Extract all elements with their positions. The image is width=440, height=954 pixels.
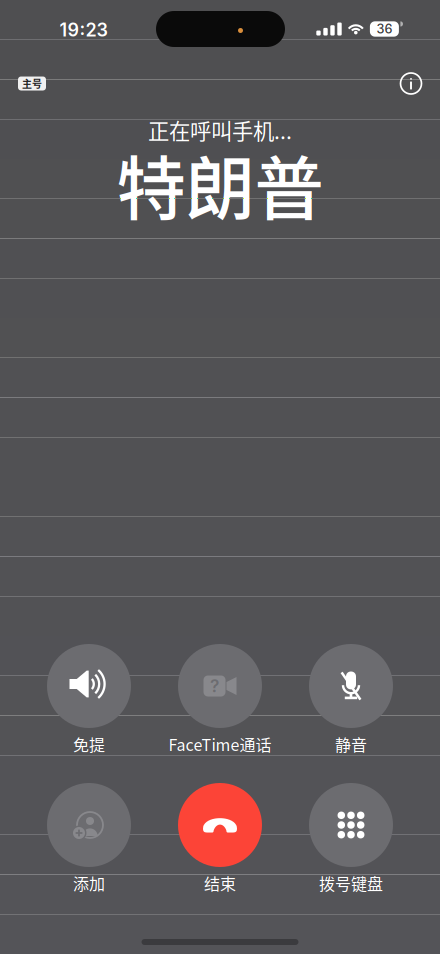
staticText: 结束 xyxy=(204,871,236,895)
button[interactable]: 主号 xyxy=(18,76,46,90)
staticText: 36 xyxy=(376,21,392,37)
staticText: 19:23 xyxy=(59,19,107,41)
button[interactable]: ? xyxy=(154,644,285,759)
button[interactable]: 拨号键盘 xyxy=(285,783,416,898)
button[interactable]: 结束 xyxy=(154,783,285,898)
staticText: 拨号键盘 xyxy=(319,871,383,895)
button[interactable]: Call details xyxy=(398,70,424,96)
staticText: 主号 xyxy=(22,76,42,91)
staticText: 正在呼叫手机... xyxy=(148,115,292,145)
staticText: FaceTime通话 xyxy=(168,732,271,756)
staticText: 特朗普 xyxy=(116,134,323,234)
staticText: 静音 xyxy=(335,732,367,756)
button[interactable]: 免提 xyxy=(23,644,154,759)
staticText: ? xyxy=(210,675,219,696)
staticText: 免提 xyxy=(73,732,105,756)
button[interactable]: 添加 xyxy=(23,783,154,898)
button[interactable]: 静音 xyxy=(285,644,416,759)
staticText: 添加 xyxy=(73,871,105,895)
